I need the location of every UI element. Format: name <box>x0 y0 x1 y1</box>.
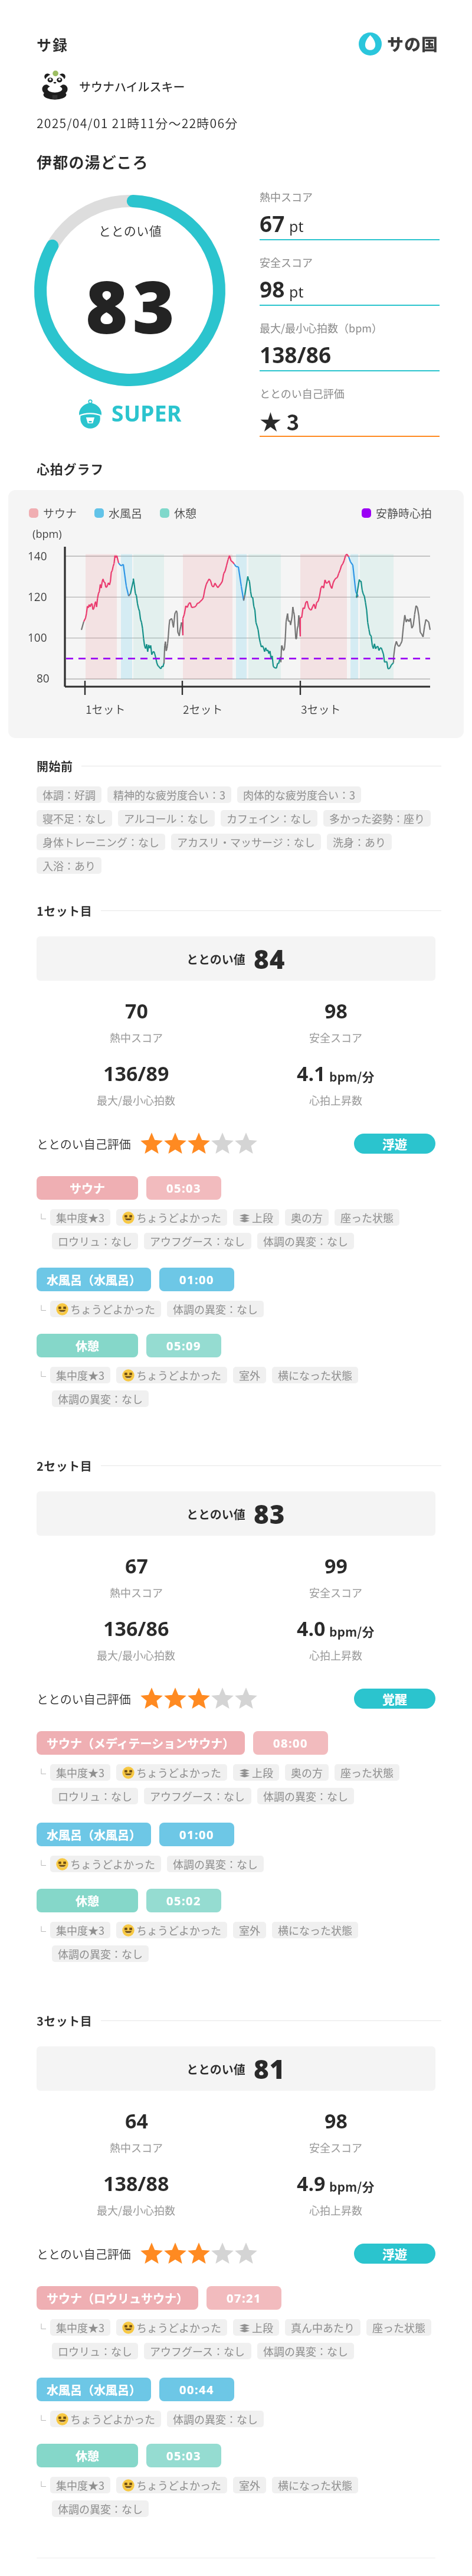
staticText: アウフグース：なし <box>150 1233 245 1249</box>
button[interactable]: 水風呂（水風呂） <box>37 1268 234 1291</box>
staticText: └ <box>37 1766 47 1780</box>
staticText: 70 <box>125 997 148 1024</box>
staticText: 81 <box>254 2051 286 2087</box>
staticText: └ <box>37 1211 47 1225</box>
staticText: ととのい自己評価 <box>37 1690 131 1707</box>
staticText: 水風呂（水風呂） <box>47 1271 141 1288</box>
button[interactable]: 水風呂（水風呂） <box>37 2378 234 2401</box>
staticText: 体調の異変：なし <box>58 1391 143 1406</box>
staticText: 07:21 <box>227 2290 261 2306</box>
staticText: サ録 <box>37 34 69 55</box>
staticText: 1セット <box>86 701 126 717</box>
staticText: 心拍上昇数 <box>309 1092 362 1108</box>
staticText: 最大/最小心拍数 <box>97 2202 176 2218</box>
staticText: bpm/分 <box>329 2177 375 2195</box>
staticText: ととのい自己評価 <box>37 1135 131 1152</box>
staticText: ととのい値 <box>186 2061 245 2078</box>
staticText: 集中度★3 <box>56 1210 104 1225</box>
button[interactable]: 浮遊 <box>354 1134 435 1154</box>
staticText: 多かった姿勢：座り <box>329 811 425 826</box>
staticText: 休憩 <box>76 1337 99 1354</box>
staticText: 座った状態 <box>340 1765 394 1780</box>
staticText: ロウリュ：なし <box>58 2343 132 2359</box>
staticText: ととのい自己評価 <box>37 2245 131 2262</box>
staticText: 00:44 <box>179 2382 214 2398</box>
staticText: 138/88 <box>103 2170 169 2197</box>
button[interactable]: 覚醒 <box>354 1689 435 1709</box>
staticText: 安全スコア <box>309 1585 362 1600</box>
staticText: 浮遊 <box>382 1135 407 1152</box>
button[interactable]: 休憩 <box>37 2444 221 2467</box>
staticText: 熱中スコア <box>110 1585 163 1600</box>
staticText: サウナ（ロウリュサウナ） <box>47 2290 188 2307</box>
staticText: 08:00 <box>273 1735 308 1751</box>
staticText: 140 <box>28 548 47 564</box>
staticText: 1セット目 <box>37 902 93 919</box>
staticText: 最大/最小心拍数 <box>97 1647 176 1663</box>
staticText: (bpm) <box>32 527 62 541</box>
staticText: 上段 <box>252 1765 273 1780</box>
staticText: 3セット <box>301 701 341 717</box>
staticText: ととのい値 <box>186 951 245 968</box>
staticText: 覚醒 <box>382 1690 407 1707</box>
staticText: 洗身：あり <box>333 834 386 850</box>
button[interactable]: 水風呂（水風呂） <box>37 1823 234 1846</box>
staticText: └ <box>37 1302 47 1316</box>
staticText: 心拍上昇数 <box>309 1647 362 1663</box>
staticText: ととのい値 <box>186 1506 245 1523</box>
staticText: 83 <box>86 257 179 355</box>
staticText: 体調の異変：なし <box>263 1233 348 1249</box>
staticText: 安全スコア <box>309 1030 362 1045</box>
staticText: 体調の異変：なし <box>173 2411 258 2427</box>
button[interactable]: 休憩 <box>37 1889 221 1912</box>
button[interactable]: 休憩 <box>37 1334 221 1357</box>
staticText: └ <box>37 1924 47 1937</box>
staticText: サウナ（メディテーションサウナ） <box>47 1735 235 1752</box>
staticText: 上段 <box>252 2320 273 2335</box>
staticText: 01:00 <box>179 1272 214 1288</box>
staticText: カフェイン：なし <box>227 811 312 826</box>
staticText: 138/86 <box>260 339 332 369</box>
staticText: ちょうどよかった <box>136 1922 221 1938</box>
staticText: 入浴：あり <box>42 858 96 873</box>
staticText: 64 <box>125 2107 148 2134</box>
staticText: 熱中スコア <box>260 189 313 204</box>
button[interactable]: サウナ（ロウリュサウナ） <box>37 2286 281 2310</box>
staticText: 室外 <box>239 1922 260 1938</box>
staticText: 99 <box>324 1552 348 1579</box>
staticText: 2セット目 <box>37 1457 93 1474</box>
staticText: 集中度★3 <box>56 1367 104 1383</box>
staticText: 開始前 <box>37 758 73 775</box>
staticText: 奥の方 <box>291 1765 323 1780</box>
staticText: 身体トレーニング：なし <box>42 834 159 850</box>
staticText: 横になった状態 <box>278 1367 352 1383</box>
staticText: 水風呂（水風呂） <box>47 1826 141 1843</box>
button[interactable]: サウナの国 ロゴ <box>359 32 439 56</box>
staticText: 4.0 <box>297 1615 326 1642</box>
staticText: 05:09 <box>166 1338 201 1354</box>
button[interactable]: 浮遊 <box>354 2244 435 2264</box>
staticText: 上段 <box>252 1210 273 1225</box>
staticText: ちょうどよかった <box>136 1210 221 1225</box>
button[interactable]: サウナ（メディテーションサウナ） <box>37 1731 328 1755</box>
staticText: 熱中スコア <box>110 1030 163 1045</box>
staticText: └ <box>37 1857 47 1871</box>
staticText: 浮遊 <box>382 2245 407 2262</box>
staticText: 水風呂 <box>109 505 143 521</box>
staticText: 05:03 <box>166 1180 201 1196</box>
staticText: └ <box>37 2412 47 2426</box>
staticText: 集中度★3 <box>56 2320 104 2335</box>
button[interactable]: サウナ <box>37 1176 221 1200</box>
staticText: 4.9 <box>297 2170 326 2197</box>
staticText: 心拍グラフ <box>37 459 104 478</box>
staticText: 安全スコア <box>309 2140 362 2155</box>
staticText: 2セット <box>183 701 223 717</box>
staticText: 最大/最小心拍数（bpm） <box>260 320 383 335</box>
staticText: └ <box>37 2321 47 2335</box>
staticText: ロウリュ：なし <box>58 1233 132 1249</box>
staticText: ちょうどよかった <box>70 1856 155 1872</box>
staticText: 01:00 <box>179 1827 214 1843</box>
staticText: 100 <box>28 630 47 645</box>
staticText: ★ 3 <box>260 405 300 437</box>
staticText: サウナ <box>70 1180 105 1197</box>
